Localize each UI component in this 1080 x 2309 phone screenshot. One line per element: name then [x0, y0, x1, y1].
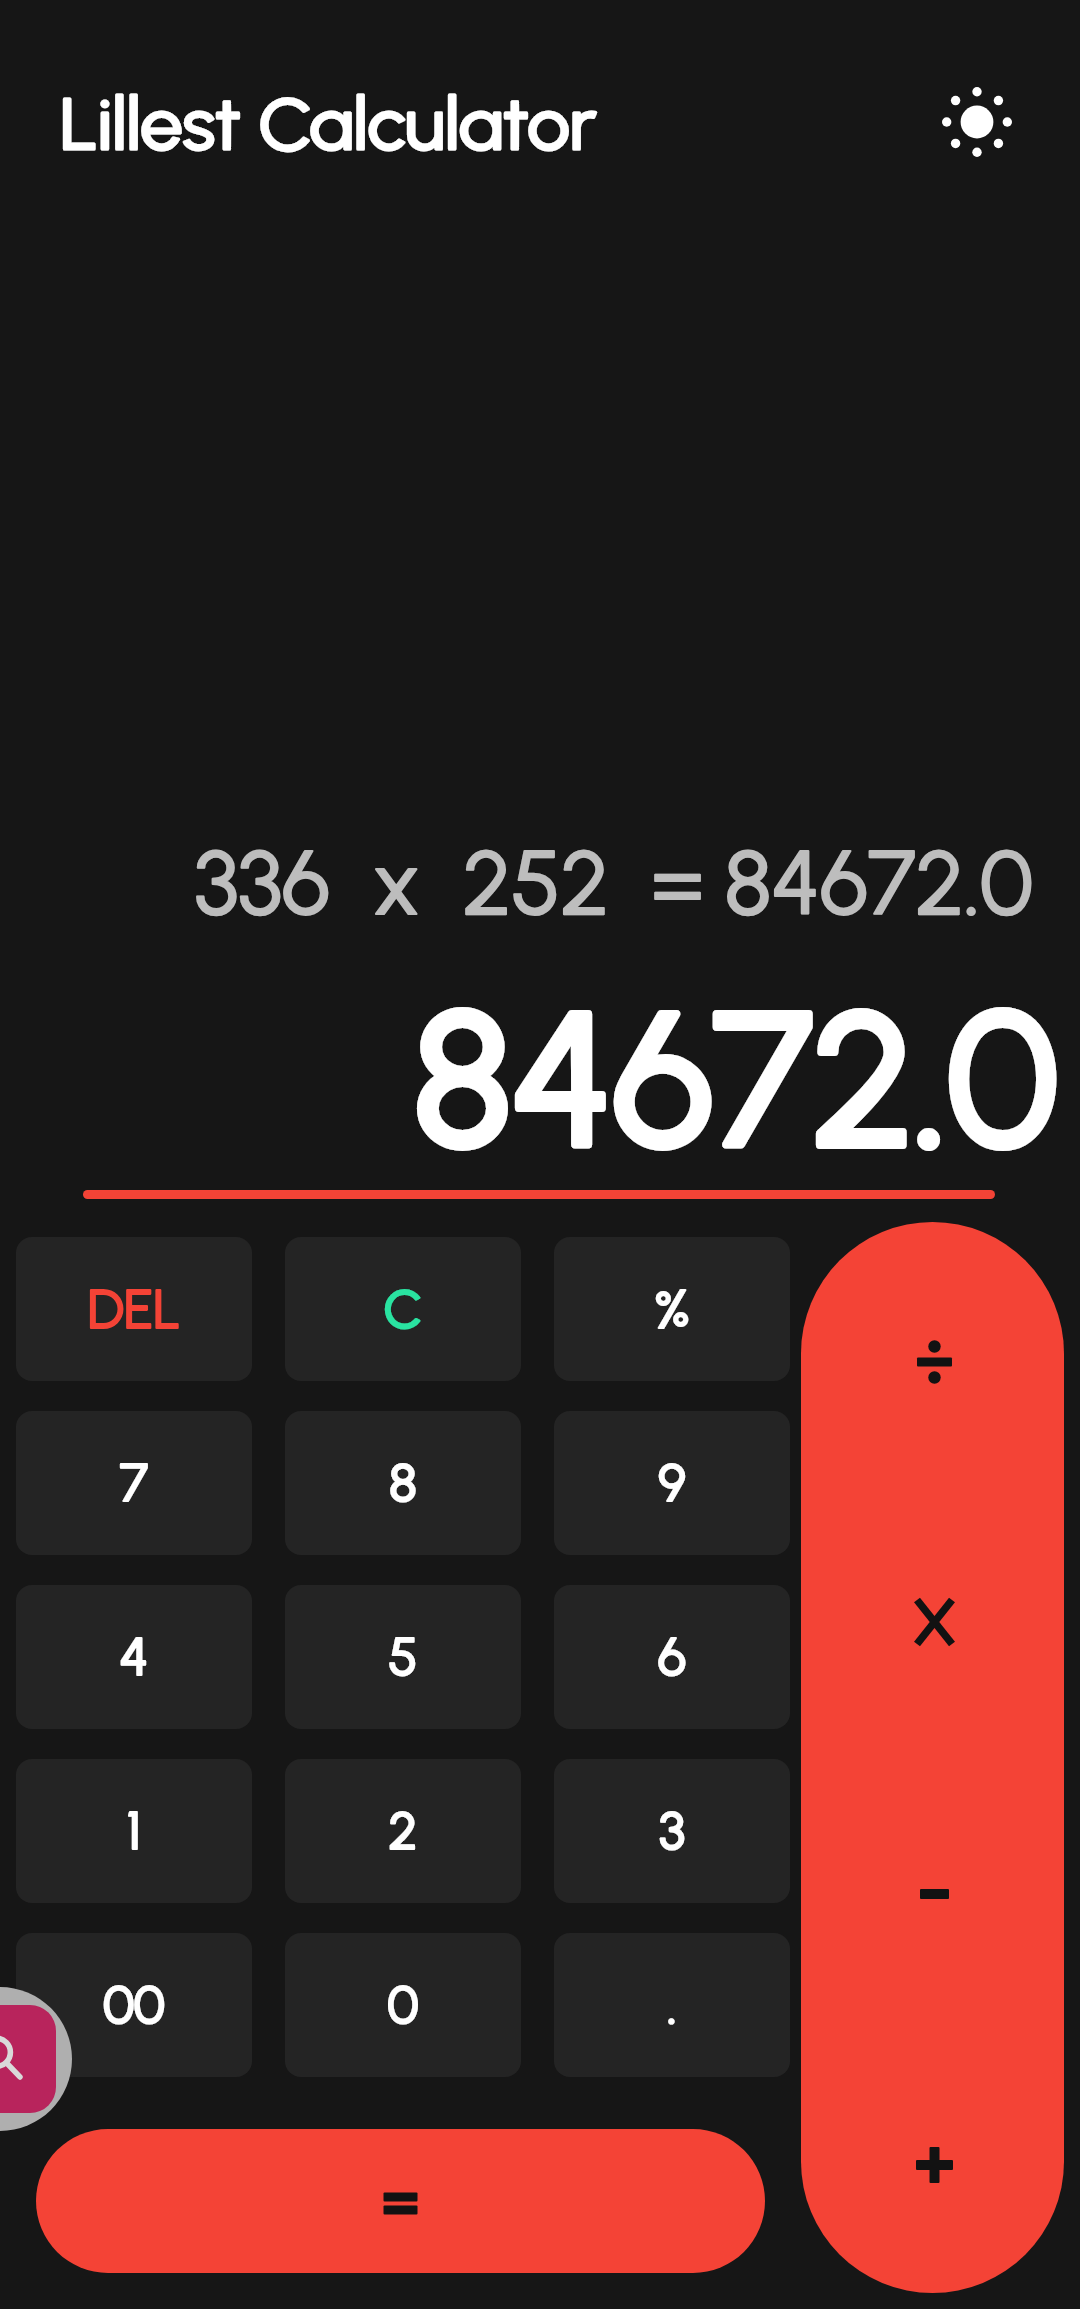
staticText: %	[554, 1277, 790, 1342]
button[interactable]: 2	[285, 1759, 521, 1903]
button[interactable]: 5	[285, 1585, 521, 1729]
button[interactable]: C	[285, 1237, 521, 1381]
staticText: 0	[285, 1974, 521, 2036]
button[interactable]: 8	[285, 1411, 521, 1555]
staticText: 84672.0	[0, 968, 1058, 1191]
staticText: 1	[16, 1800, 252, 1862]
staticText: C	[285, 1277, 521, 1342]
staticText: .	[554, 1974, 790, 2036]
staticText: 6	[554, 1626, 790, 1688]
staticText: 7	[16, 1452, 252, 1514]
staticText: %	[554, 1277, 790, 1342]
staticText: 6	[554, 1626, 790, 1688]
button[interactable]: 00	[16, 1933, 252, 2077]
button[interactable]: Search	[0, 1987, 72, 2131]
staticText: 4	[16, 1626, 252, 1688]
staticText: DEL	[16, 1277, 252, 1342]
staticText: 9	[554, 1452, 790, 1514]
staticText: 3	[554, 1800, 790, 1862]
button[interactable]: Multiply	[801, 1488, 1064, 1756]
button[interactable]: 6	[554, 1585, 790, 1729]
staticText: 00	[16, 1974, 252, 2036]
staticText: 7	[16, 1452, 252, 1514]
button[interactable]: 7	[16, 1411, 252, 1555]
staticText: 2	[285, 1800, 521, 1862]
staticText: Lillest Calculator	[60, 81, 791, 167]
button[interactable]: .	[554, 1933, 790, 2077]
staticText: 4	[16, 1626, 252, 1688]
staticText: 2	[285, 1800, 521, 1862]
staticText: 336 x 252 = 84672.0	[0, 829, 1033, 936]
staticText: 0	[285, 1974, 521, 2036]
button[interactable]: 4	[16, 1585, 252, 1729]
staticText: 8	[285, 1452, 521, 1514]
button[interactable]: %	[554, 1237, 790, 1381]
staticText: 00	[16, 1974, 252, 2036]
button[interactable]: Divide	[801, 1228, 1064, 1496]
staticText: 5	[285, 1626, 521, 1688]
staticText: DEL	[16, 1277, 252, 1342]
staticText: .	[554, 1974, 790, 2036]
staticText: Lillest Calculator	[60, 81, 791, 167]
button[interactable]: Subtract	[801, 1760, 1064, 2028]
staticText: 9	[554, 1452, 790, 1514]
button[interactable]: 1	[16, 1759, 252, 1903]
button[interactable]: DEL	[16, 1237, 252, 1381]
button[interactable]: 0	[285, 1933, 521, 2077]
staticText: 5	[285, 1626, 521, 1688]
staticText: 3	[554, 1800, 790, 1862]
staticText: 1	[16, 1800, 252, 1862]
button[interactable]: 3	[554, 1759, 790, 1903]
staticText: C	[285, 1277, 521, 1342]
button[interactable]: Add	[801, 2031, 1064, 2299]
button[interactable]: 9	[554, 1411, 790, 1555]
staticText: 336 x 252 = 84672.0	[0, 829, 1033, 936]
staticText: 84672.0	[0, 968, 1058, 1191]
staticText: 8	[285, 1452, 521, 1514]
button[interactable]: Equals	[36, 2129, 765, 2273]
button[interactable]: Toggle theme	[916, 61, 1037, 182]
